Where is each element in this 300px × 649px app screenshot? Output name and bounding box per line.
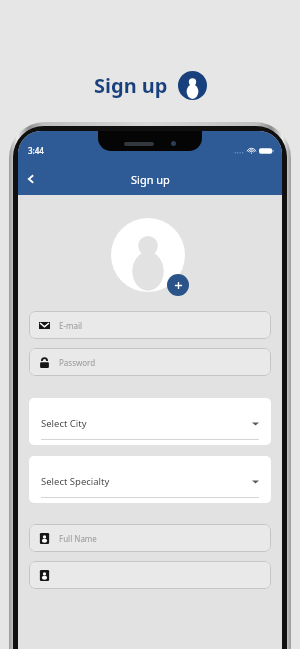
staticText: Password (59, 357, 96, 368)
staticText: E-mail (59, 320, 83, 331)
button[interactable]: Add photo (167, 274, 189, 296)
button[interactable]: Back (18, 166, 44, 192)
button[interactable]: E-mail (29, 311, 271, 339)
button[interactable]: Select City (29, 398, 271, 445)
staticText: Select Specialty (41, 475, 110, 488)
staticText: Full Name (59, 533, 97, 544)
button[interactable] (29, 561, 271, 589)
staticText: 3:44 (28, 145, 44, 156)
staticText: Sign up (131, 172, 170, 187)
button[interactable]: Password (29, 348, 271, 376)
staticText: Select City (41, 417, 87, 430)
staticText: Sign up (94, 72, 168, 99)
button[interactable]: Full Name (29, 524, 271, 552)
button[interactable]: Select Specialty (29, 456, 271, 503)
